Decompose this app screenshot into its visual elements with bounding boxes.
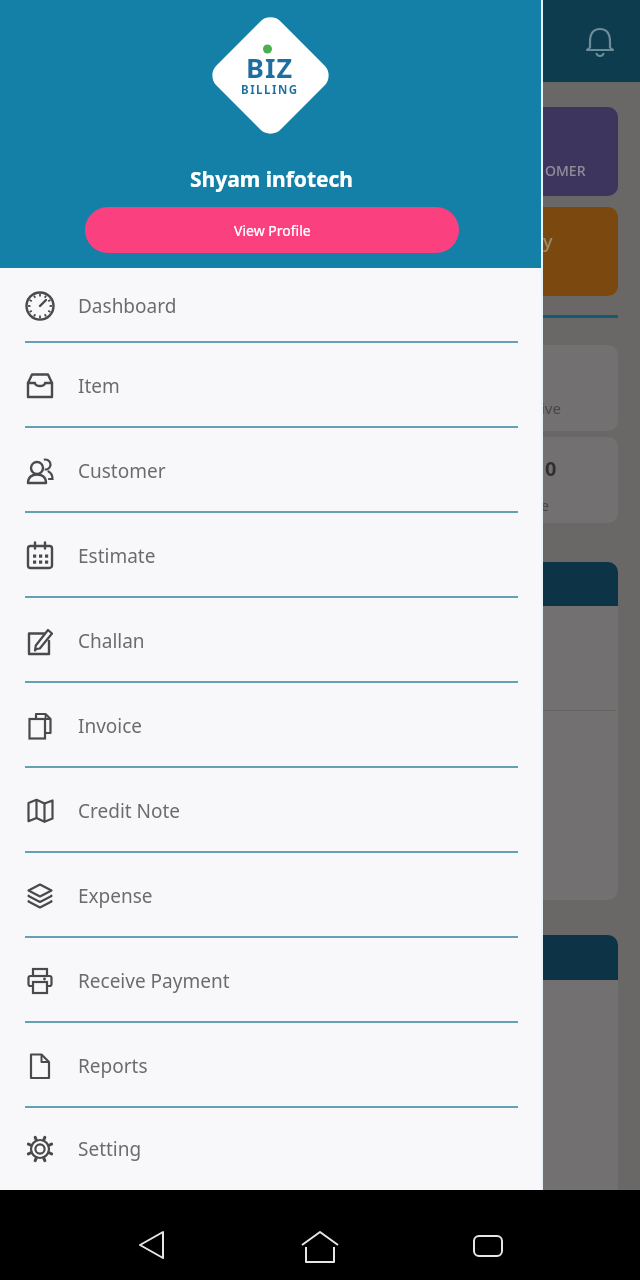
button[interactable]: Invoice [0,683,543,768]
staticText: Shyam infotech [0,165,543,194]
staticText: e [541,496,549,515]
staticText: BIZ [246,49,294,86]
staticText: Estimate [78,543,156,569]
staticText: OMER [545,161,586,180]
button[interactable]: Dashboard [0,268,543,343]
button[interactable] [427,1190,640,1280]
button[interactable]: Item [0,343,543,428]
staticText: Invoice [78,713,143,739]
staticText: Expense [78,883,153,909]
staticText: 0 [545,455,557,482]
button[interactable]: Setting [0,1108,543,1190]
button[interactable]: Estimate [0,513,543,598]
staticText: Challan [78,628,145,654]
staticText: BILLING [241,82,299,98]
staticText: Dashboard [78,293,177,319]
button[interactable]: Expense [0,853,543,938]
staticText: View Profile [234,221,311,240]
staticText: y [543,229,553,254]
button[interactable] [0,1190,214,1280]
button[interactable]: Customer [0,428,543,513]
button[interactable]: View Profile [85,207,459,253]
staticText: Setting [78,1136,142,1162]
button[interactable]: Credit Note [0,768,543,853]
staticText: Item [78,373,120,399]
button[interactable]: Challan [0,598,543,683]
staticText: Receive Payment [78,968,230,994]
staticText: Customer [78,458,166,484]
button[interactable] [214,1190,427,1280]
staticText: Reports [78,1053,148,1079]
button[interactable]: Receive Payment [0,938,543,1023]
staticText: ive [541,398,561,418]
staticText: Credit Note [78,798,181,824]
button[interactable]: Reports [0,1023,543,1108]
